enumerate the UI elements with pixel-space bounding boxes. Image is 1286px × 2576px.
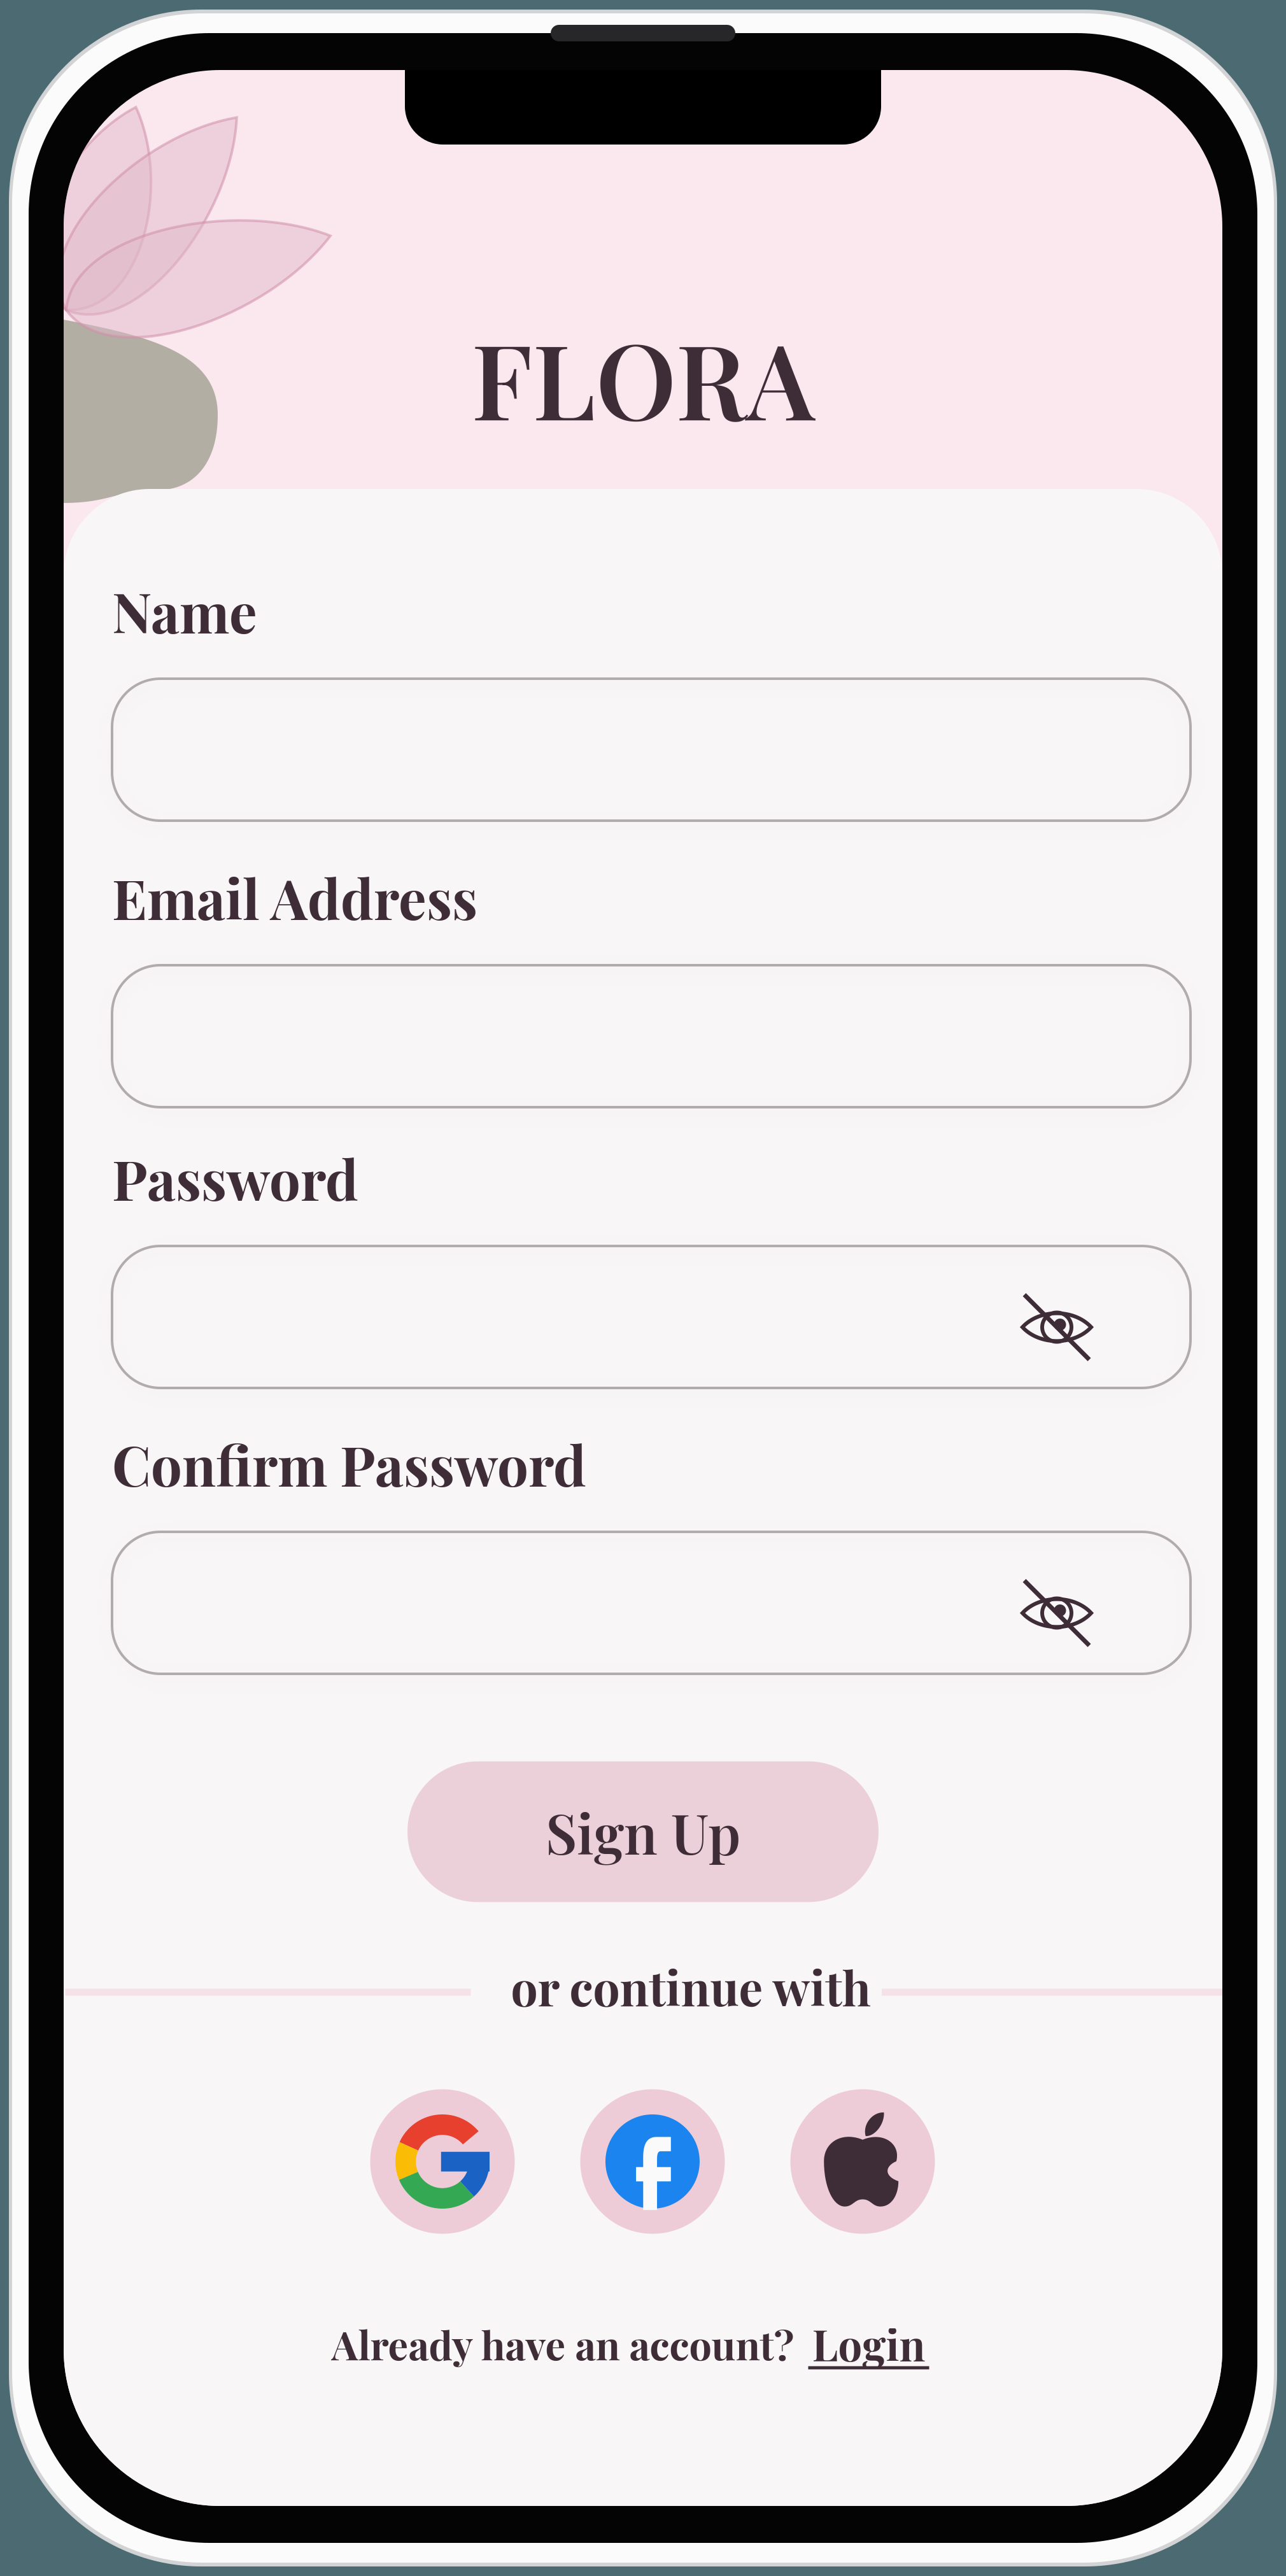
- button[interactable]: Already have an account?: [331, 2312, 929, 2375]
- button[interactable]: Continue with Google: [370, 2089, 515, 2234]
- staticText: Sign Up: [546, 1795, 740, 1868]
- button[interactable]: Continue with Facebook: [580, 2089, 725, 2234]
- staticText: or continue with: [511, 1955, 871, 2018]
- staticText: FLORA: [471, 307, 815, 447]
- staticText: Email Address: [112, 860, 477, 934]
- button[interactable]: Continue with Apple: [790, 2089, 935, 2234]
- staticText: Password: [112, 1141, 358, 1215]
- button[interactable]: Show password: [923, 1246, 1191, 1388]
- staticText: Already have an account?: [331, 2317, 794, 2370]
- staticText: Login: [812, 2315, 925, 2372]
- staticText: Name: [112, 574, 257, 647]
- button[interactable]: Sign Up: [407, 1761, 879, 1902]
- button[interactable]: Show password: [923, 1532, 1191, 1674]
- staticText: Confirm Password: [112, 1427, 586, 1500]
